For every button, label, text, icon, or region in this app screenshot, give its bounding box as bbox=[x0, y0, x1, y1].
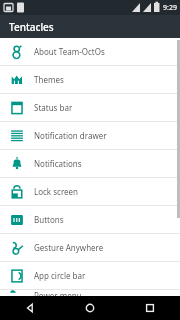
staticText: Lock screen bbox=[34, 186, 79, 197]
staticText: App circle bar bbox=[34, 270, 86, 281]
button[interactable]: Lock screen bbox=[0, 178, 180, 205]
button[interactable]: App circle bar bbox=[0, 262, 180, 289]
button[interactable]: Buttons bbox=[0, 206, 180, 233]
staticText: About Team-OctOs bbox=[34, 46, 105, 57]
staticText: Tentacles bbox=[9, 20, 54, 34]
button[interactable]: Power menu bbox=[0, 290, 180, 296]
staticText: Status bar bbox=[34, 102, 73, 113]
staticText: Notification drawer bbox=[34, 130, 107, 141]
staticText: Themes bbox=[34, 74, 64, 85]
button[interactable]: Status bar bbox=[0, 94, 180, 121]
button[interactable]: About Team-OctOs bbox=[0, 38, 180, 65]
button[interactable]: Notifications bbox=[0, 150, 180, 177]
button[interactable]: Themes bbox=[0, 66, 180, 93]
button[interactable]: Notification drawer bbox=[0, 122, 180, 149]
staticText: Buttons bbox=[34, 214, 64, 225]
staticText: Gesture Anywhere bbox=[34, 242, 104, 253]
staticText: Power menu bbox=[34, 290, 82, 296]
button[interactable]: Gesture Anywhere bbox=[0, 234, 180, 261]
button[interactable]: Back bbox=[0, 296, 60, 320]
button[interactable]: Recents bbox=[120, 296, 180, 320]
staticText: 9:29 bbox=[163, 3, 177, 13]
button[interactable]: Home bbox=[60, 296, 120, 320]
staticText: Notifications bbox=[34, 158, 82, 169]
